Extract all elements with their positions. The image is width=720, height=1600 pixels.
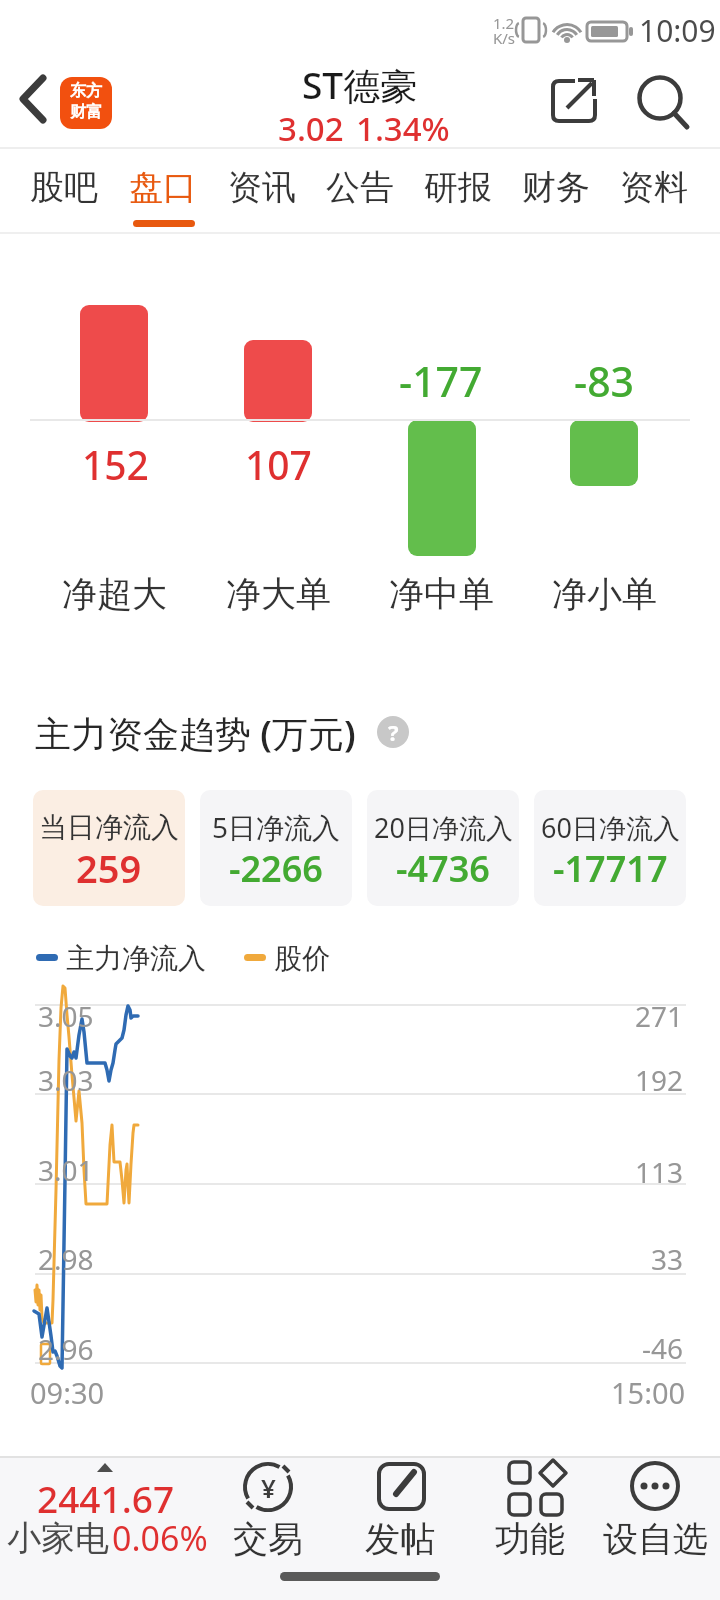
staticText: 2.98	[38, 1240, 94, 1278]
staticText: 3.01	[38, 1151, 94, 1189]
staticText: 净小单	[552, 572, 657, 616]
staticText: 15:00	[611, 1373, 686, 1412]
staticText: 107	[245, 438, 312, 491]
staticText: 259	[76, 842, 142, 894]
staticText: 当日净流入	[39, 810, 179, 845]
staticText: 33	[651, 1240, 684, 1278]
staticText: -17717	[553, 844, 668, 893]
staticText: 3.05	[38, 997, 94, 1035]
staticText: 3.02	[278, 106, 344, 151]
staticText: 股价	[274, 941, 330, 976]
staticText: 10:09	[639, 10, 716, 51]
staticText: 财务	[522, 166, 590, 209]
staticText: 公告	[326, 166, 394, 209]
staticText: ¥	[261, 1470, 276, 1505]
staticText: -177	[399, 353, 483, 409]
staticText: 股吧	[30, 166, 98, 209]
staticText: 设自选	[603, 1517, 708, 1561]
staticText: 盘口	[129, 166, 197, 209]
staticText: -46	[642, 1329, 684, 1367]
staticText: 研报	[424, 166, 492, 209]
staticText: 发帖	[365, 1517, 435, 1561]
staticText: ST德豪	[302, 59, 418, 110]
staticText: 2.96	[38, 1330, 94, 1368]
staticText: 3.03	[38, 1061, 94, 1099]
staticText: 0.06%	[112, 1515, 208, 1561]
staticText: 09:30	[30, 1373, 105, 1412]
staticText: 1.2	[493, 13, 515, 33]
staticText: 60日净流入	[541, 809, 680, 846]
staticText: 152	[82, 438, 149, 491]
staticText: 功能	[495, 1517, 565, 1561]
staticText: 小家电	[7, 1517, 109, 1560]
staticText: 271	[635, 997, 684, 1035]
staticText: 1.34%	[356, 106, 450, 151]
staticText: K/s	[493, 28, 516, 48]
staticText: 20日净流入	[374, 809, 513, 846]
staticText: 资料	[620, 166, 688, 209]
staticText: 主力净流入	[66, 941, 206, 976]
staticText: 净中单	[389, 572, 494, 616]
staticText: 192	[635, 1061, 684, 1099]
staticText: ?	[388, 717, 399, 747]
staticText: 主力资金趋势 (万元)	[35, 709, 356, 758]
staticText: 2441.67	[37, 1473, 175, 1523]
staticText: -4736	[396, 844, 490, 893]
staticText: 财富	[70, 102, 102, 122]
staticText: 5日净流入	[212, 808, 341, 846]
staticText: 净大单	[226, 572, 331, 616]
staticText: -2266	[229, 844, 323, 893]
staticText: 净超大	[62, 572, 167, 616]
staticText: 113	[635, 1153, 684, 1191]
staticText: 交易	[233, 1517, 303, 1561]
staticText: 资讯	[228, 166, 296, 209]
staticText: 东方	[70, 81, 102, 101]
staticText: -83	[574, 353, 635, 409]
